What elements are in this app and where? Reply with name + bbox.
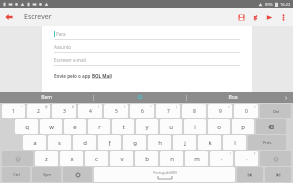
- button[interactable]: Escrever e-mail: [54, 55, 240, 65]
- button[interactable]: Anexar: [248, 8, 262, 26]
- button[interactable]: k: [198, 135, 221, 150]
- button[interactable]: Configurações: [63, 167, 92, 182]
- button[interactable]: a: [23, 135, 46, 150]
- staticText: i: [194, 123, 196, 131]
- button[interactable]: 9: [208, 104, 232, 118]
- staticText: Bem: [41, 94, 52, 101]
- staticText: !: [230, 152, 231, 156]
- button[interactable]: 8: [182, 104, 206, 118]
- button[interactable]: Shift: [2, 151, 33, 166]
- button[interactable]: i: [184, 119, 206, 134]
- button[interactable]: 4: [78, 104, 102, 118]
- staticText: 3: [63, 108, 66, 115]
- button[interactable]: Sym: [32, 167, 61, 182]
- staticText: 1: [12, 108, 15, 115]
- staticText: t: [122, 123, 125, 131]
- button[interactable]: ,: [210, 151, 233, 166]
- button[interactable]: b: [135, 151, 158, 166]
- staticText: o: [217, 123, 221, 131]
- button[interactable]: v: [110, 151, 133, 166]
- button[interactable]: Mais sugestões: [279, 92, 293, 103]
- staticText: n: [170, 155, 174, 163]
- button[interactable]: n: [160, 151, 183, 166]
- button[interactable]: Boa: [187, 92, 279, 103]
- button[interactable]: Para: [54, 29, 240, 39]
- staticText: l: [234, 139, 236, 147]
- staticText: c: [95, 155, 98, 163]
- button[interactable]: s: [48, 135, 71, 150]
- button[interactable]: q: [15, 119, 38, 134]
- button[interactable]: 7: [156, 104, 180, 118]
- staticText: g: [133, 139, 137, 147]
- button[interactable]: Bem: [0, 92, 93, 103]
- staticText: \: [124, 105, 126, 109]
- staticText: r: [98, 123, 101, 131]
- staticText: 0: [245, 108, 248, 115]
- button[interactable]: Ctrl: [2, 167, 30, 182]
- button[interactable]: p: [232, 119, 254, 134]
- staticText: @: [45, 105, 48, 109]
- staticText: 9: [219, 108, 222, 115]
- button[interactable]: x: [60, 151, 83, 166]
- button[interactable]: 3: [52, 104, 76, 118]
- button[interactable]: t: [112, 119, 134, 134]
- button[interactable]: Shift direita: [260, 151, 291, 166]
- button[interactable]: y: [136, 119, 158, 134]
- staticText: Prós.: [263, 140, 272, 145]
- staticText: >: [254, 105, 256, 109]
- staticText: q: [25, 123, 29, 131]
- button[interactable]: Cursor direita: [265, 167, 291, 182]
- button[interactable]: l: [223, 135, 246, 150]
- button[interactable]: j: [173, 135, 196, 150]
- button[interactable]: z: [35, 151, 58, 166]
- button[interactable]: c: [85, 151, 108, 166]
- button[interactable]: Del: [260, 104, 291, 118]
- staticText: y: [145, 123, 149, 131]
- button[interactable]: r: [88, 119, 110, 134]
- staticText: Para: [56, 31, 66, 37]
- button[interactable]: Assunto: [54, 42, 240, 52]
- button[interactable]: Prós.: [248, 135, 286, 150]
- staticText: j: [184, 139, 186, 147]
- button[interactable]: Voltar: [0, 8, 18, 26]
- button[interactable]: 6: [130, 104, 154, 118]
- button[interactable]: o: [208, 119, 230, 134]
- staticText: x: [70, 155, 74, 163]
- button[interactable]: Apagar: [256, 119, 286, 134]
- staticText: 6: [141, 108, 144, 115]
- button[interactable]: Cursor esquerda: [237, 167, 263, 182]
- button[interactable]: 2: [27, 104, 50, 118]
- button[interactable]: u: [160, 119, 182, 134]
- button[interactable]: Mais opções: [276, 8, 290, 26]
- staticText: BOL Mail: [92, 73, 112, 79]
- button[interactable]: Enviar: [262, 8, 276, 26]
- button[interactable]: d: [73, 135, 96, 150]
- button[interactable]: .: [235, 151, 258, 166]
- button[interactable]: m: [185, 151, 208, 166]
- staticText: 4: [89, 108, 92, 115]
- button[interactable]: 5: [104, 104, 128, 118]
- staticText: .: [246, 155, 248, 162]
- button[interactable]: f: [98, 135, 121, 150]
- button[interactable]: Oi: [94, 92, 186, 103]
- staticText: v: [120, 155, 124, 163]
- button[interactable]: h: [148, 135, 171, 150]
- button[interactable]: g: [123, 135, 146, 150]
- staticText: Envie pelo o app: [54, 73, 92, 79]
- staticText: ': [203, 105, 204, 109]
- staticText: 89%: [265, 2, 273, 7]
- staticText: Escrever: [24, 12, 52, 22]
- staticText: Ctrl: [13, 172, 20, 177]
- button[interactable]: w: [40, 119, 62, 134]
- button[interactable]: 0: [234, 104, 258, 118]
- staticText: k: [208, 139, 212, 147]
- staticText: e: [73, 123, 77, 131]
- button[interactable]: e: [64, 119, 86, 134]
- staticText: 8: [193, 108, 196, 115]
- staticText: b: [145, 155, 149, 163]
- staticText: h: [158, 139, 162, 147]
- button[interactable]: Salvar: [234, 8, 248, 26]
- button[interactable]: Espaço: [94, 167, 235, 182]
- button[interactable]: 1: [2, 104, 25, 118]
- staticText: ~: [21, 105, 23, 109]
